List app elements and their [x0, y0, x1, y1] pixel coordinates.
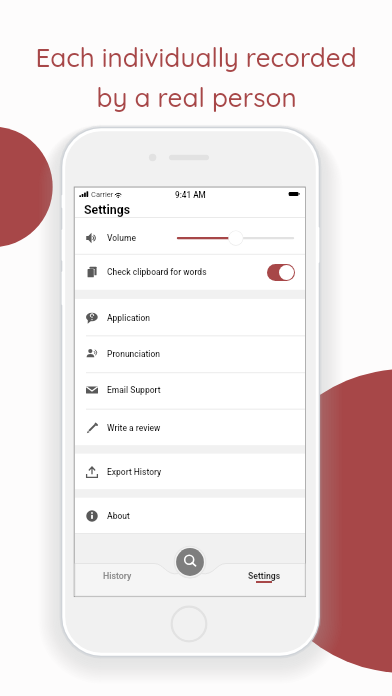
button[interactable] — [267, 264, 295, 281]
button[interactable]: Search — [174, 546, 206, 578]
button[interactable] — [85, 565, 145, 589]
staticText: by a real person — [96, 81, 297, 114]
staticText: 9:41 AM — [175, 190, 206, 200]
staticText: Check clipboard for words — [107, 267, 207, 277]
staticText: Pronunciation — [107, 349, 161, 359]
button[interactable]: Email Support — [75, 372, 305, 408]
button[interactable]: Check clipboard for words — [75, 254, 305, 290]
staticText: Volume — [107, 233, 136, 243]
button[interactable]: Pronunciation — [75, 335, 305, 372]
staticText: About — [107, 511, 130, 521]
staticText: Application — [107, 313, 151, 323]
staticText: Each individually recorded — [35, 41, 357, 74]
staticText: Email Support — [107, 385, 161, 395]
button[interactable]: Volume — [75, 217, 305, 254]
button[interactable] — [234, 565, 294, 589]
button[interactable]: Application — [75, 299, 305, 336]
button[interactable]: About — [75, 498, 305, 534]
button[interactable]: Write a review — [75, 409, 305, 446]
staticText: Write a review — [107, 423, 161, 433]
staticText: Export History — [107, 467, 162, 477]
staticText: Settings — [84, 203, 131, 217]
staticText: Carrier — [91, 190, 114, 199]
staticText: History — [103, 571, 132, 581]
button[interactable]: Export History — [75, 454, 305, 490]
staticText: Settings — [248, 571, 281, 581]
